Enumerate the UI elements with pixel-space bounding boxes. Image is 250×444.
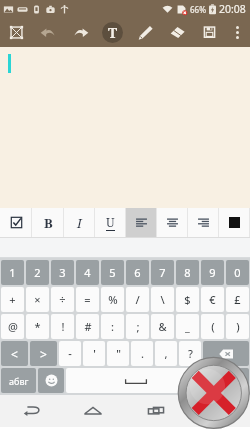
- staticText: _: [185, 319, 190, 334]
- button[interactable]: Backspace: [203, 341, 249, 366]
- button[interactable]: @: [1, 314, 24, 339]
- button[interactable]: &: [151, 314, 174, 339]
- staticText: ,: [164, 346, 168, 361]
- staticText: 7: [159, 265, 166, 280]
- staticText: 0: [234, 265, 241, 280]
- button[interactable]: Emoji: [38, 368, 64, 393]
- button[interactable]: абвг: [1, 368, 36, 393]
- button[interactable]: .: [131, 341, 153, 366]
- button[interactable]: Home: [62, 395, 124, 427]
- staticText: ÷: [59, 292, 66, 307]
- button[interactable]: [0, 208, 32, 237]
- button[interactable]: =: [76, 287, 99, 312]
- button[interactable]: 4: [76, 260, 99, 285]
- staticText: ": [116, 346, 121, 361]
- button[interactable]: >: [30, 341, 57, 366]
- staticText: &: [158, 319, 167, 334]
- staticText: >: [40, 346, 47, 362]
- staticText: !: [61, 319, 65, 334]
- button[interactable]: 0: [226, 260, 249, 285]
- button[interactable]: 9: [201, 260, 224, 285]
- staticText: #: [84, 319, 92, 334]
- button[interactable]: 7: [151, 260, 174, 285]
- button[interactable]: +: [1, 287, 24, 312]
- button[interactable]: £: [226, 287, 249, 312]
- button[interactable]: ?: [179, 341, 201, 366]
- button[interactable]: ×: [26, 287, 49, 312]
- staticText: :: [111, 319, 114, 334]
- button[interactable]: (: [201, 314, 224, 339]
- button[interactable]: <: [1, 341, 28, 366]
- button[interactable]: ÷: [51, 287, 74, 312]
- button[interactable]: /: [126, 287, 149, 312]
- button[interactable]: -: [59, 341, 81, 366]
- button[interactable]: *: [26, 314, 49, 339]
- button[interactable]: More options: [225, 18, 250, 47]
- button[interactable]: ": [107, 341, 129, 366]
- staticText: *: [34, 319, 41, 334]
- button[interactable]: B: [32, 208, 64, 237]
- staticText: T: [108, 23, 118, 42]
- staticText: (: [211, 319, 215, 334]
- staticText: 6: [134, 265, 141, 280]
- staticText: €: [209, 292, 216, 307]
- button[interactable]: Enter: [208, 368, 249, 393]
- button[interactable]: !: [51, 314, 74, 339]
- button[interactable]: ): [226, 314, 249, 339]
- button[interactable]: [188, 208, 219, 237]
- staticText: /: [135, 292, 140, 307]
- button[interactable]: 5: [101, 260, 124, 285]
- button[interactable]: ': [83, 341, 105, 366]
- button[interactable]: Back: [0, 395, 62, 427]
- button[interactable]: €: [201, 287, 224, 312]
- staticText: <: [11, 346, 18, 362]
- button[interactable]: I: [64, 208, 95, 237]
- staticText: ): [236, 319, 240, 334]
- button[interactable]: Text tool: [96, 18, 129, 47]
- staticText: £: [234, 292, 241, 307]
- button[interactable]: Select: [0, 18, 32, 47]
- staticText: 5: [109, 265, 116, 280]
- staticText: 66%: [190, 4, 206, 15]
- button[interactable]: 1: [1, 260, 24, 285]
- button[interactable]: Recents: [124, 395, 187, 427]
- button[interactable]: [219, 208, 250, 237]
- button[interactable]: 3: [51, 260, 74, 285]
- button[interactable]: :: [101, 314, 124, 339]
- button[interactable]: Pen: [129, 18, 161, 47]
- button[interactable]: #: [76, 314, 99, 339]
- staticText: ;: [136, 319, 140, 334]
- button[interactable]: U: [95, 208, 126, 237]
- button[interactable]: $: [176, 287, 199, 312]
- button[interactable]: Space: [66, 368, 206, 393]
- staticText: 9: [209, 265, 216, 280]
- button[interactable]: Undo: [32, 18, 64, 47]
- button[interactable]: %: [101, 287, 124, 312]
- button[interactable]: 8: [176, 260, 199, 285]
- button[interactable]: _: [176, 314, 199, 339]
- staticText: 8: [184, 265, 191, 280]
- button[interactable]: [126, 208, 157, 237]
- button[interactable]: 6: [126, 260, 149, 285]
- staticText: =: [84, 292, 91, 307]
- staticText: ?: [188, 346, 193, 361]
- staticText: $: [184, 292, 191, 307]
- button[interactable]: [157, 208, 188, 237]
- button[interactable]: 2: [26, 260, 49, 285]
- staticText: %: [108, 292, 118, 307]
- staticText: ': [93, 346, 96, 361]
- staticText: B: [44, 214, 53, 232]
- button[interactable]: Eraser: [161, 18, 193, 47]
- button[interactable]: Save: [193, 18, 225, 47]
- staticText: 20:08: [219, 2, 246, 16]
- staticText: ×: [34, 292, 41, 307]
- staticText: 3: [59, 265, 66, 280]
- staticText: +: [9, 292, 16, 307]
- staticText: 4: [84, 265, 91, 280]
- staticText: @: [8, 319, 18, 334]
- button[interactable]: \: [151, 287, 174, 312]
- staticText: -: [68, 346, 72, 361]
- button[interactable]: ;: [126, 314, 149, 339]
- button[interactable]: ,: [155, 341, 177, 366]
- button[interactable]: Redo: [64, 18, 96, 47]
